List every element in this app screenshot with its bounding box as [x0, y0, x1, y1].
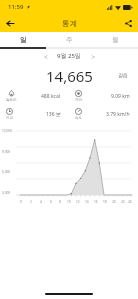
button[interactable]: Back	[3, 16, 17, 30]
staticText: 16	[94, 200, 98, 204]
staticText: 10	[67, 200, 71, 204]
staticText: 월	[112, 36, 119, 44]
staticText: 0	[20, 200, 22, 204]
staticText: 3,000	[2, 191, 11, 195]
staticText: 거리	[75, 98, 82, 102]
staticText: 시간	[6, 116, 13, 120]
button[interactable]: 속도	[69, 107, 138, 121]
button[interactable]: 일	[0, 32, 46, 47]
staticText: 14	[85, 200, 89, 204]
staticText: 9.09 km	[111, 93, 130, 100]
staticText: 9월 25일	[57, 52, 81, 60]
staticText: 주	[66, 36, 73, 44]
staticText: 18	[103, 200, 107, 204]
button[interactable]: 주	[46, 32, 92, 47]
staticText: 6,000	[2, 170, 11, 174]
staticText: 6	[50, 200, 52, 204]
staticText: 2	[30, 200, 32, 204]
staticText: 14,665	[46, 66, 93, 84]
button[interactable]: 월	[92, 32, 138, 47]
staticText: 속도	[75, 116, 82, 120]
staticText: 통계	[62, 19, 77, 28]
staticText: 12	[76, 200, 80, 204]
staticText: 8	[59, 200, 61, 204]
staticText: 걸음	[118, 72, 128, 78]
staticText: 칼로리	[6, 98, 17, 102]
staticText: 24	[128, 200, 132, 204]
staticText: 9,000	[2, 150, 11, 154]
staticText: 136 분	[46, 111, 61, 118]
staticText: 11:59	[8, 3, 24, 11]
staticText: 22	[121, 200, 125, 204]
button[interactable]: Next day	[87, 51, 98, 62]
staticText: 4	[40, 200, 42, 204]
staticText: 3.79 km/h	[106, 111, 130, 118]
button[interactable]: Share	[121, 16, 135, 30]
staticText: 20	[112, 200, 116, 204]
staticText: 488 kcal	[41, 93, 61, 100]
staticText: 일	[20, 36, 27, 44]
button[interactable]: 칼로리	[0, 89, 69, 103]
button[interactable]: Previous day	[40, 51, 51, 62]
staticText: 12,000	[2, 129, 12, 133]
button[interactable]: 시간	[0, 107, 69, 121]
button[interactable]: 거리	[69, 89, 138, 103]
